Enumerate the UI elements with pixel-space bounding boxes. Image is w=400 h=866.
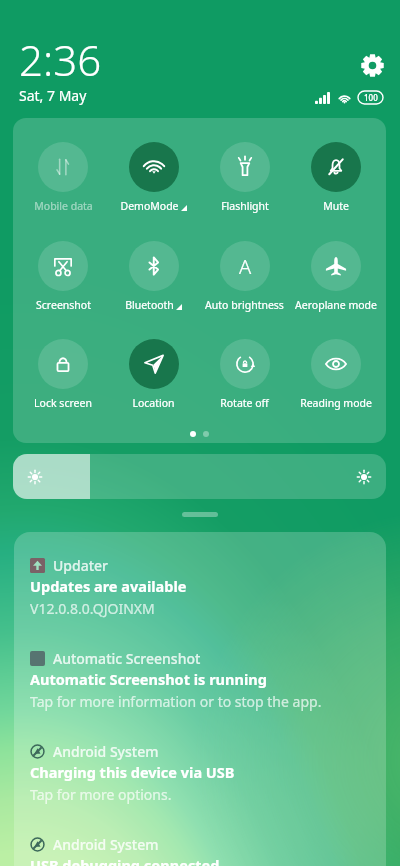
- staticText: Aeroplane mode: [295, 298, 377, 312]
- staticText: Flashlight: [221, 199, 269, 213]
- staticText: Lock screen: [34, 396, 92, 410]
- staticText: V12.0.8.0.QJOINXM: [30, 599, 155, 618]
- button[interactable]: Settings: [355, 48, 389, 82]
- staticText: Tap for more options.: [30, 785, 172, 804]
- button[interactable]: Flashlight: [199, 142, 290, 213]
- staticText: Updates are available: [30, 576, 187, 596]
- button[interactable]: Automatic Screenshot: [30, 649, 370, 711]
- staticText: DemoMode: [120, 199, 179, 213]
- staticText: Automatic Screenshot is running: [30, 669, 267, 689]
- button[interactable]: Android System: [30, 835, 370, 866]
- button[interactable]: Brightness: [13, 454, 386, 499]
- button[interactable]: Lock screen: [18, 339, 108, 410]
- staticText: A: [239, 253, 252, 280]
- button[interactable]: Updater: [30, 556, 370, 618]
- staticText: Charging this device via USB: [30, 762, 235, 782]
- button[interactable]: Mute: [290, 142, 381, 213]
- staticText: Rotate off: [220, 396, 269, 410]
- staticText: Mobile data: [34, 199, 93, 213]
- staticText: Tap for more information or to stop the …: [30, 692, 322, 711]
- staticText: Updater: [53, 556, 109, 575]
- staticText: 2:36: [19, 31, 102, 88]
- button[interactable]: Bluetooth: [108, 241, 199, 312]
- button[interactable]: Reading mode: [290, 339, 381, 410]
- staticText: Android System: [53, 742, 159, 761]
- button[interactable]: Aeroplane mode: [290, 241, 381, 312]
- staticText: Bluetooth: [125, 298, 174, 312]
- button[interactable]: A: [199, 241, 290, 312]
- staticText: Screenshot: [36, 298, 91, 312]
- button[interactable]: Mobile data: [18, 142, 108, 213]
- staticText: Sat, 7 May: [19, 86, 87, 105]
- staticText: Location: [132, 396, 175, 410]
- button[interactable]: Rotate off: [199, 339, 290, 410]
- button[interactable]: DemoMode: [108, 142, 199, 213]
- staticText: Android System: [53, 835, 159, 854]
- staticText: Auto brightness: [205, 298, 284, 312]
- staticText: Mute: [323, 199, 349, 213]
- button[interactable]: Android System: [30, 742, 370, 804]
- staticText: Reading mode: [300, 396, 372, 410]
- button[interactable]: Location: [108, 339, 199, 410]
- button[interactable]: Screenshot: [18, 241, 108, 312]
- staticText: 100: [364, 92, 378, 103]
- staticText: Automatic Screenshot: [53, 649, 201, 668]
- staticText: USB debugging connected: [30, 855, 220, 866]
